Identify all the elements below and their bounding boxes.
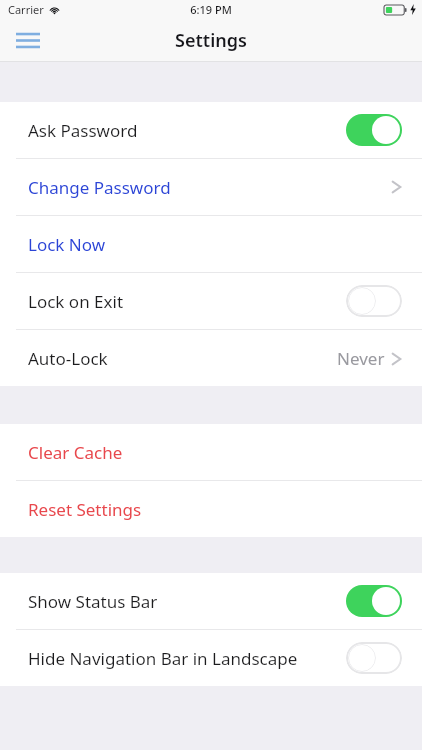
- staticText: Hide Navigation Bar in Landscape: [28, 647, 298, 670]
- other: More: [391, 350, 402, 368]
- staticText: Auto-Lock: [28, 347, 108, 370]
- button[interactable]: Toggle on: [346, 585, 402, 617]
- button[interactable]: Lock Now: [0, 216, 422, 272]
- staticText: Ask Password: [28, 119, 138, 142]
- staticText: 6:19 PM: [190, 2, 232, 17]
- button[interactable]: Auto-Lock: [0, 330, 422, 386]
- button[interactable]: Reset Settings: [0, 481, 422, 537]
- button[interactable]: Lock on Exit: [0, 273, 422, 329]
- staticText: Clear Cache: [28, 441, 123, 464]
- staticText: Change Password: [28, 176, 171, 199]
- button[interactable]: Hide Navigation Bar in Landscape: [0, 630, 422, 686]
- staticText: Never: [337, 347, 385, 370]
- button[interactable]: Menu: [8, 20, 48, 60]
- staticText: Show Status Bar: [28, 590, 158, 613]
- button[interactable]: Clear Cache: [0, 424, 422, 480]
- staticText: Lock Now: [28, 233, 106, 256]
- staticText: Reset Settings: [28, 498, 142, 521]
- staticText: Lock on Exit: [28, 290, 124, 313]
- staticText: Settings: [175, 28, 247, 53]
- staticText: Carrier: [8, 2, 44, 17]
- button[interactable]: Toggle on: [346, 114, 402, 146]
- button[interactable]: Ask Password: [0, 102, 422, 158]
- other: More: [391, 178, 402, 196]
- button[interactable]: Toggle off: [346, 285, 402, 317]
- button[interactable]: Toggle off: [346, 642, 402, 674]
- button[interactable]: Change Password: [0, 159, 422, 215]
- button[interactable]: Show Status Bar: [0, 573, 422, 629]
